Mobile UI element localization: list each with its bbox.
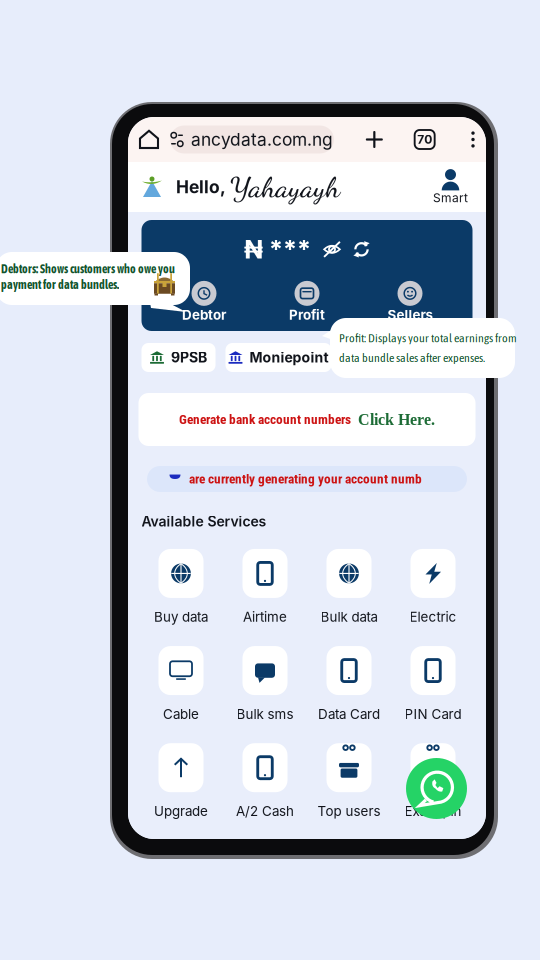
- staticText: Available Services: [141, 513, 266, 530]
- button[interactable]: Bulk data: [307, 549, 391, 625]
- button[interactable]: PIN Card: [391, 646, 475, 722]
- staticText: Hello,: [176, 176, 226, 197]
- button[interactable]: Toggle balance visibility: [323, 240, 341, 258]
- staticText: Smart: [433, 191, 468, 205]
- staticText: Sellers: [387, 307, 432, 323]
- button[interactable]: Debtor: [152, 281, 255, 323]
- button[interactable]: Airtime: [223, 549, 307, 625]
- staticText: 9PSB: [171, 349, 207, 366]
- staticText: Debtor: [182, 307, 226, 323]
- staticText: Yahayayh: [230, 169, 340, 205]
- staticText: Data Card: [318, 706, 380, 722]
- staticText: Bulk data: [320, 609, 377, 625]
- staticText: Buy data: [154, 609, 208, 625]
- button[interactable]: Data Card: [307, 646, 391, 722]
- staticText: ₦ ***: [244, 234, 311, 265]
- button[interactable]: 9PSB: [141, 343, 215, 372]
- staticText: Bulk sms: [236, 706, 293, 722]
- staticText: Moniepoint: [249, 349, 328, 366]
- button[interactable]: Electric: [391, 549, 475, 625]
- staticText: 70: [417, 132, 432, 147]
- staticText: Cable: [163, 706, 199, 722]
- button[interactable]: Sellers: [358, 281, 461, 323]
- button[interactable]: More options: [460, 124, 486, 154]
- staticText: data bundle sales after expenses.: [339, 351, 485, 365]
- staticText: Exam pin: [404, 803, 461, 819]
- staticText: Electric: [409, 609, 456, 625]
- staticText: Profit: [289, 307, 325, 323]
- button[interactable]: Smart: [433, 169, 486, 205]
- button[interactable]: Top users: [307, 743, 391, 819]
- button[interactable]: Bulk sms: [223, 646, 307, 722]
- staticText: A/2 Cash: [236, 803, 294, 819]
- staticText: ancydata.com.ng: [191, 129, 333, 150]
- button[interactable]: New tab: [359, 124, 389, 154]
- button[interactable]: Upgrade: [139, 743, 223, 819]
- staticText: Airtime: [243, 609, 287, 625]
- staticText: Debtors: Shows customers who owe you: [1, 262, 175, 276]
- button[interactable]: Tabs: [415, 130, 435, 149]
- staticText: are currently generating your account nu…: [189, 471, 422, 487]
- staticText: Upgrade: [154, 803, 208, 819]
- button[interactable]: ancydata.com.ng: [170, 125, 334, 153]
- button[interactable]: Cable: [139, 646, 223, 722]
- button[interactable]: Refresh balance: [353, 241, 370, 258]
- button[interactable]: Home: [128, 130, 170, 149]
- staticText: PIN Card: [404, 706, 461, 722]
- staticText: Click Here.: [358, 411, 435, 428]
- staticText: Generate bank account numbers: [179, 412, 351, 427]
- button[interactable]: Chat on WhatsApp: [406, 758, 467, 819]
- staticText: payment for data bundles.: [1, 278, 119, 292]
- button[interactable]: Generate bank account numbers: [138, 393, 475, 446]
- button[interactable]: Profit: [255, 281, 358, 323]
- button[interactable]: Exam pin: [391, 743, 475, 819]
- staticText: Top users: [317, 803, 380, 819]
- button[interactable]: Buy data: [139, 549, 223, 625]
- button[interactable]: A/2 Cash: [223, 743, 307, 819]
- staticText: Profit: Displays your total earnings fro…: [339, 331, 517, 345]
- button[interactable]: Moniepoint: [225, 343, 331, 372]
